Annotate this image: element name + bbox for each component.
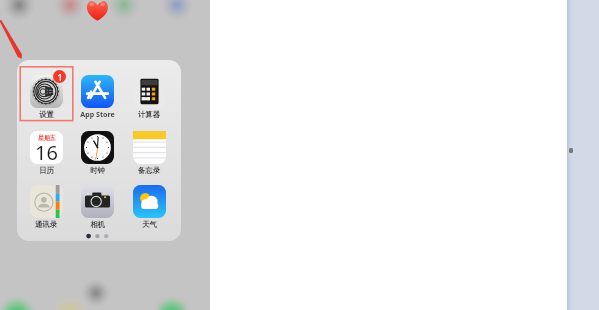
other: Heart [86,0,109,21]
staticText: 16 [35,139,58,162]
staticText: 天气 [142,220,157,229]
staticText: 星期五 [38,134,56,141]
staticText: 1 [57,71,63,83]
staticText: 日历 [39,166,54,175]
staticText: 备忘录 [138,166,160,175]
button[interactable]: 时钟 [75,131,119,175]
button[interactable]: App Store [75,75,119,120]
button[interactable]: 计算器 [127,75,171,119]
button[interactable]: 备忘录 [127,131,171,175]
staticText: 计算器 [138,110,160,119]
staticText: App Store [80,109,115,119]
staticText: 时钟 [90,166,105,175]
button[interactable]: 1 [24,75,68,119]
staticText: 通讯录 [35,220,57,229]
button[interactable]: 相机 [75,185,119,229]
staticText: 相机 [90,220,105,229]
button[interactable]: 天气 [127,185,171,229]
button[interactable]: 星期五 [24,131,68,175]
button[interactable]: 通讯录 [24,185,68,229]
staticText: 设置 [39,110,54,119]
other: Scroll handle [569,148,573,153]
